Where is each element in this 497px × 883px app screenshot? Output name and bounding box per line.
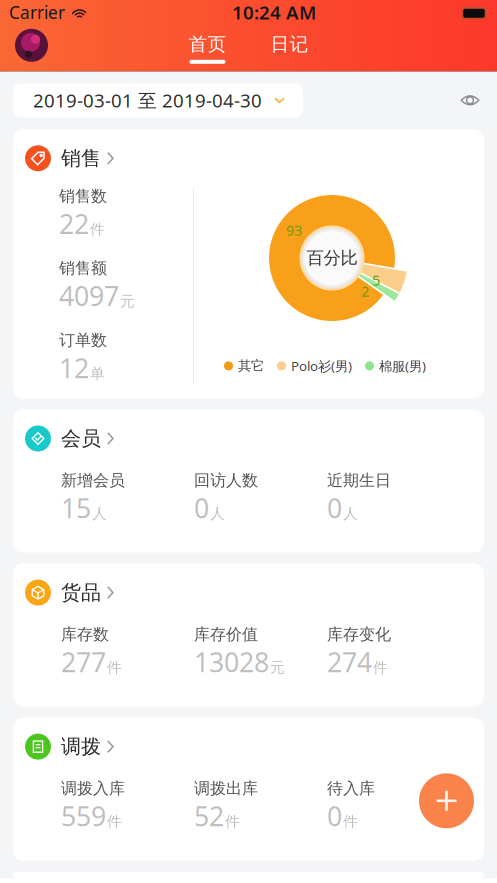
button[interactable]: 会员: [13, 420, 484, 456]
staticText: 库存变化: [327, 625, 391, 644]
staticText: 库存价值: [194, 625, 258, 644]
button[interactable]: Toggle visibility: [453, 83, 487, 117]
staticText: 277: [61, 644, 106, 680]
staticText: 销售数: [59, 186, 107, 206]
staticText: 22: [59, 206, 89, 241]
staticText: 2: [361, 281, 369, 301]
staticText: 百分比: [306, 247, 357, 269]
staticText: 首页: [188, 33, 226, 56]
staticText: Carrier: [9, 1, 65, 24]
staticText: 新增会员: [61, 470, 125, 490]
staticText: 52: [194, 798, 224, 834]
staticText: 2019-03-01 至 2019-04-30: [33, 88, 262, 113]
staticText: 5: [372, 270, 380, 290]
staticText: 棉服(男): [379, 357, 426, 375]
button[interactable]: 首页: [187, 35, 227, 54]
staticText: 274: [327, 644, 372, 680]
staticText: 13028: [194, 644, 269, 680]
staticText: 件: [107, 659, 122, 677]
staticText: 待入库: [327, 779, 375, 798]
staticText: 人: [210, 504, 225, 522]
staticText: 0: [194, 490, 209, 526]
staticText: 0: [327, 798, 342, 834]
staticText: 调拨入库: [61, 779, 125, 798]
staticText: 货品: [61, 580, 101, 605]
button[interactable]: 调拨: [13, 729, 484, 765]
staticText: 调拨: [61, 734, 101, 759]
staticText: 单: [90, 364, 105, 382]
staticText: 库存数: [61, 625, 109, 644]
staticText: 12: [59, 350, 89, 385]
staticText: 人: [343, 504, 358, 522]
staticText: 件: [343, 813, 358, 831]
staticText: 回访人数: [194, 470, 258, 490]
staticText: 其它: [238, 358, 264, 374]
staticText: 调拨出库: [194, 779, 258, 798]
button[interactable]: 日记: [269, 35, 309, 54]
staticText: 订单数: [59, 330, 107, 350]
button[interactable]: 销售: [13, 140, 484, 176]
staticText: 件: [107, 813, 122, 831]
staticText: 559: [61, 798, 106, 834]
button[interactable]: Add: [419, 773, 474, 828]
staticText: 15: [61, 490, 91, 526]
staticText: 销售: [61, 146, 101, 171]
staticText: 件: [373, 659, 388, 677]
staticText: 元: [270, 659, 285, 677]
button[interactable]: Profile: [15, 29, 48, 62]
staticText: 近期生日: [327, 470, 391, 490]
button[interactable]: 货品: [13, 575, 484, 611]
staticText: 93: [286, 220, 302, 240]
staticText: 件: [90, 220, 105, 238]
button[interactable]: 2019-03-01 至 2019-04-30: [13, 83, 303, 117]
staticText: 人: [92, 504, 107, 522]
staticText: 件: [225, 813, 240, 831]
staticText: 日记: [270, 33, 308, 56]
staticText: 会员: [61, 426, 101, 451]
staticText: 4097: [59, 278, 119, 313]
staticText: 销售额: [59, 258, 107, 278]
staticText: 0: [327, 490, 342, 526]
staticText: 10:24 AM: [232, 0, 316, 25]
staticText: 元: [120, 292, 135, 310]
staticText: Polo衫(男): [291, 357, 352, 375]
